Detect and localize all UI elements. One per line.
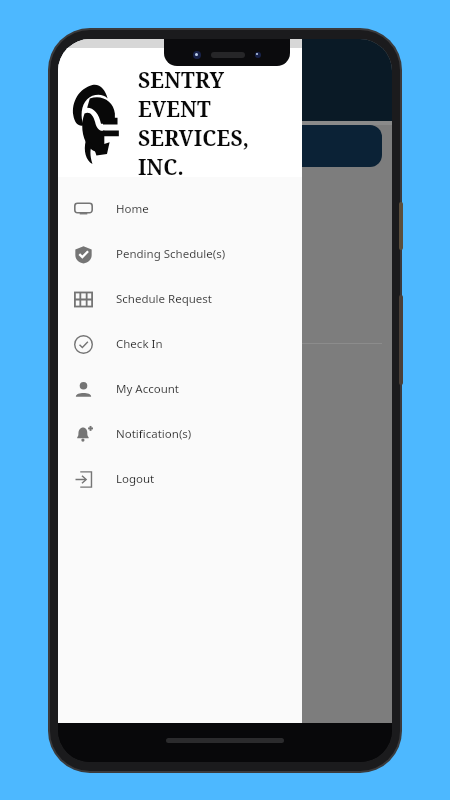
button[interactable]: Notifications (58, 411, 302, 456)
other: Home (74, 200, 93, 219)
staticText: SENTRY EVENT (138, 66, 296, 124)
other: Pending Schedules (74, 245, 93, 264)
staticText: Check In (116, 336, 163, 352)
other: My Account (74, 380, 93, 399)
other: Schedule Request (74, 290, 93, 309)
staticText: Notification(s) (116, 426, 192, 442)
staticText: Schedule Request (116, 291, 213, 307)
button[interactable]: Pending Schedules (58, 231, 302, 276)
other: Sentry Event Services logo (70, 80, 136, 164)
button[interactable]: Schedule Request (58, 276, 302, 321)
staticText: Home (116, 201, 149, 217)
other: Check In (74, 335, 93, 354)
staticText: My Account (116, 381, 179, 397)
button[interactable]: Logout (58, 456, 302, 501)
button[interactable]: My Account (58, 366, 302, 411)
staticText: SERVICES, INC. (138, 124, 296, 177)
staticText: Logout (116, 471, 155, 487)
other: Notifications (74, 425, 93, 444)
button[interactable]: Home (58, 186, 302, 231)
other: Logout (74, 470, 93, 489)
staticText: Pending Schedule(s) (116, 246, 226, 262)
button[interactable]: Check In (58, 321, 302, 366)
